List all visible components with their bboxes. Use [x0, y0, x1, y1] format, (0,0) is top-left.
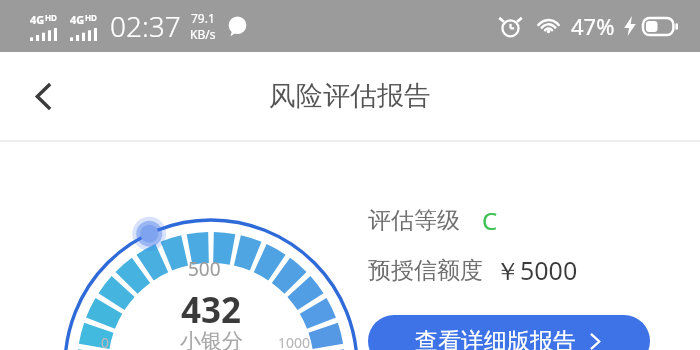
- staticText: 查看详细版报告: [415, 327, 576, 350]
- staticText: ￥5000: [495, 253, 578, 287]
- staticText: 47%: [571, 11, 615, 41]
- button[interactable]: 查看详细版报告: [368, 315, 650, 350]
- staticText: 4G: [70, 12, 85, 27]
- staticText: 02:37: [110, 7, 181, 45]
- staticText: 1000: [278, 333, 311, 350]
- staticText: C: [482, 204, 498, 237]
- staticText: 风险评估报告: [269, 79, 431, 113]
- staticText: HD: [45, 12, 57, 23]
- staticText: 432: [181, 286, 242, 334]
- staticText: 预授信额度: [368, 256, 483, 285]
- staticText: 评估等级: [368, 206, 460, 235]
- staticText: HD: [85, 12, 97, 23]
- button[interactable]: Back: [16, 69, 70, 123]
- staticText: 4G: [30, 12, 45, 27]
- staticText: 79.1: [191, 10, 215, 26]
- staticText: KB/s: [190, 26, 216, 42]
- staticText: 0: [101, 333, 110, 350]
- staticText: 500: [188, 256, 221, 282]
- staticText: 小银分: [180, 328, 243, 350]
